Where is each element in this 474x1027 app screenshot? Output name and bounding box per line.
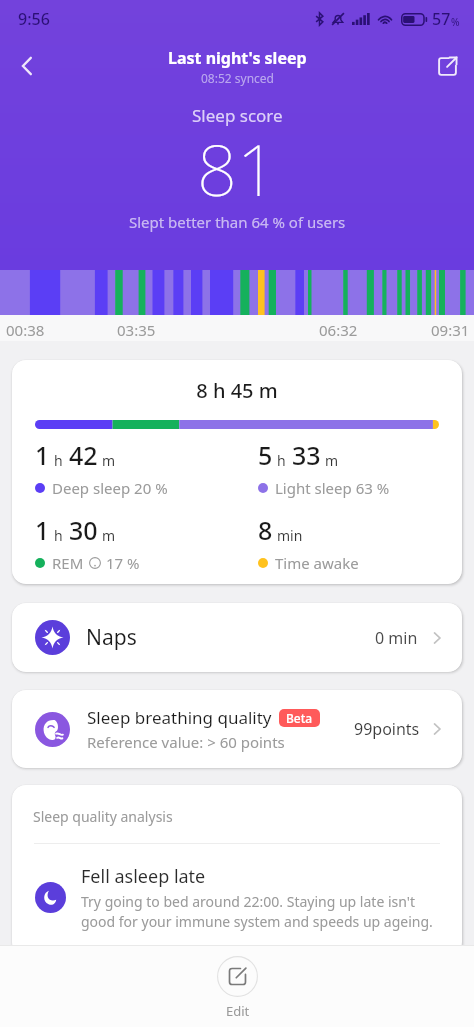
staticText: Last night's sleep — [168, 47, 307, 69]
staticText: 1 — [35, 513, 50, 547]
staticText: 08:52 synced — [201, 70, 274, 86]
staticText: Sleep breathing quality — [87, 706, 272, 729]
staticText: 99points — [354, 718, 420, 740]
staticText: Edit — [226, 1002, 250, 1020]
staticText: m — [325, 451, 339, 470]
staticText: Deep sleep 20 % — [52, 478, 168, 498]
button[interactable]: Share — [420, 40, 474, 92]
staticText: m — [102, 526, 116, 545]
staticText: h — [54, 526, 63, 545]
staticText: Try going to bed around 22:00. Staying u… — [81, 892, 440, 932]
staticText: Sleep score — [192, 104, 283, 127]
staticText: 30 — [69, 513, 98, 547]
staticText: 81 — [197, 121, 277, 216]
staticText: % — [451, 15, 460, 29]
staticText: 1 — [35, 438, 50, 472]
staticText: 5 — [258, 438, 273, 472]
staticText: m — [102, 451, 116, 470]
staticText: Light sleep 63 % — [275, 478, 390, 498]
staticText: 57 — [432, 8, 451, 30]
staticText: 03:35 — [117, 320, 156, 340]
staticText: Sleep quality analysis — [33, 807, 173, 826]
button[interactable]: Edit — [217, 956, 258, 1020]
staticText: 17 % — [106, 553, 140, 573]
button[interactable]: Naps — [12, 603, 462, 672]
staticText: 0 min — [375, 627, 418, 649]
staticText: 8 h 45 m — [35, 377, 439, 404]
staticText: Time awake — [275, 553, 359, 573]
staticText: 8 — [258, 513, 273, 547]
staticText: 42 — [69, 438, 98, 472]
staticText: 09:31 — [431, 320, 470, 340]
staticText: 33 — [292, 438, 321, 472]
staticText: Naps — [86, 623, 137, 652]
staticText: Beta — [286, 710, 313, 726]
staticText: min — [277, 526, 303, 545]
button[interactable]: Sleep breathing quality — [12, 690, 462, 768]
button[interactable]: Back — [0, 40, 54, 92]
staticText: Fell asleep late — [81, 864, 206, 889]
staticText: 00:38 — [6, 320, 45, 340]
staticText: Slept better than 64 % of users — [129, 212, 346, 232]
staticText: 9:56 — [18, 8, 50, 30]
staticText: REM — [52, 553, 84, 573]
staticText: h — [54, 451, 63, 470]
staticText: Reference value: > 60 points — [87, 732, 285, 752]
staticText: h — [277, 451, 286, 470]
staticText: 06:32 — [319, 320, 358, 340]
